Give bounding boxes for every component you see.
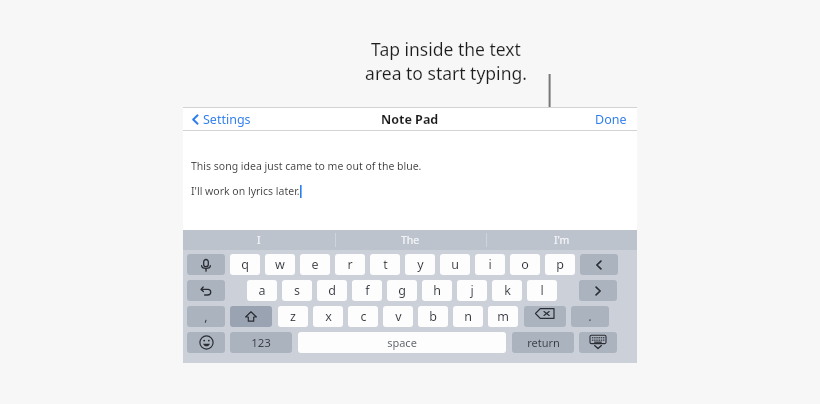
button[interactable]: space xyxy=(298,332,506,353)
button[interactable]: d xyxy=(317,280,347,301)
button[interactable]: p xyxy=(545,254,575,275)
staticText: Settings xyxy=(203,111,251,128)
staticText: . xyxy=(588,308,592,325)
staticText: Note Pad xyxy=(381,111,439,128)
button[interactable]: This song idea just came to me out of th… xyxy=(183,131,637,230)
staticText: v xyxy=(395,308,402,325)
button[interactable]: Previous xyxy=(580,254,618,275)
button[interactable]: b xyxy=(418,306,448,327)
button[interactable]: return xyxy=(512,332,574,353)
button[interactable]: I'm xyxy=(486,230,637,250)
staticText: Done xyxy=(595,111,627,128)
button[interactable]: n xyxy=(453,306,483,327)
button[interactable]: y xyxy=(405,254,435,275)
button[interactable]: Emoji xyxy=(187,332,225,353)
button[interactable]: s xyxy=(282,280,312,301)
staticText: The xyxy=(401,233,420,247)
button[interactable]: c xyxy=(348,306,378,327)
button[interactable]: w xyxy=(265,254,295,275)
button[interactable]: o xyxy=(510,254,540,275)
staticText: s xyxy=(294,282,300,299)
button[interactable]: g xyxy=(387,280,417,301)
staticText: c xyxy=(360,308,367,325)
button[interactable]: Hide keyboard xyxy=(579,332,617,353)
staticText: q xyxy=(241,256,249,273)
staticText: m xyxy=(497,308,509,325)
button[interactable]: Next xyxy=(579,280,617,301)
button[interactable]: h xyxy=(422,280,452,301)
staticText: space xyxy=(387,335,417,350)
staticText: k xyxy=(504,282,511,299)
staticText: i xyxy=(488,256,492,273)
button[interactable]: The xyxy=(335,230,486,250)
staticText: x xyxy=(325,308,332,325)
button[interactable]: a xyxy=(247,280,277,301)
button[interactable]: , xyxy=(187,306,225,327)
button[interactable]: z xyxy=(278,306,308,327)
button[interactable]: . xyxy=(571,306,609,327)
button[interactable]: Settings xyxy=(189,111,251,128)
button[interactable]: k xyxy=(492,280,522,301)
staticText: b xyxy=(429,308,437,325)
staticText: r xyxy=(347,256,353,273)
button[interactable]: Backspace xyxy=(524,306,566,327)
button[interactable]: l xyxy=(527,280,557,301)
button[interactable]: x xyxy=(313,306,343,327)
button[interactable]: Done xyxy=(595,111,627,128)
staticText: g xyxy=(398,282,406,299)
staticText: y xyxy=(417,256,424,273)
staticText: h xyxy=(433,282,441,299)
staticText: This song idea just came to me out of th… xyxy=(191,159,422,173)
staticText: z xyxy=(290,308,296,325)
button[interactable]: v xyxy=(383,306,413,327)
button[interactable]: j xyxy=(457,280,487,301)
staticText: w xyxy=(275,256,285,273)
staticText: I xyxy=(257,233,261,247)
button[interactable]: q xyxy=(230,254,260,275)
button[interactable]: m xyxy=(488,306,518,327)
button[interactable]: i xyxy=(475,254,505,275)
staticText: t xyxy=(383,256,388,273)
button[interactable]: t xyxy=(370,254,400,275)
staticText: j xyxy=(470,282,474,299)
button[interactable]: f xyxy=(352,280,382,301)
staticText: u xyxy=(451,256,459,273)
staticText: , xyxy=(204,308,208,325)
staticText: I'll work on lyrics later. xyxy=(191,184,300,198)
staticText: I'm xyxy=(554,233,570,247)
button[interactable]: Shift xyxy=(230,306,272,327)
staticText: a xyxy=(258,282,266,299)
button[interactable]: 123 xyxy=(230,332,292,353)
staticText: f xyxy=(365,282,370,299)
staticText: l xyxy=(540,282,544,299)
button[interactable]: Dictation xyxy=(187,254,225,275)
button[interactable]: u xyxy=(440,254,470,275)
staticText: Tap inside the text area to start typing… xyxy=(333,37,559,85)
button[interactable]: I xyxy=(183,230,335,250)
staticText: o xyxy=(521,256,529,273)
staticText: d xyxy=(328,282,336,299)
button[interactable]: r xyxy=(335,254,365,275)
button[interactable]: e xyxy=(300,254,330,275)
staticText: n xyxy=(464,308,472,325)
staticText: return xyxy=(527,335,560,350)
staticText: e xyxy=(311,256,319,273)
staticText: p xyxy=(556,256,564,273)
button[interactable]: Undo xyxy=(187,280,225,301)
staticText: 123 xyxy=(251,335,271,351)
